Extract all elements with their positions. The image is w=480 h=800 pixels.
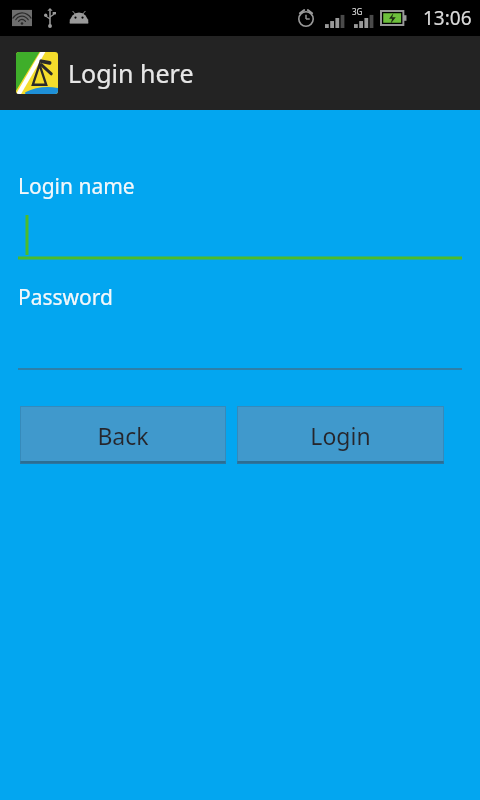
staticText: Login name bbox=[18, 172, 135, 201]
staticText: Login here bbox=[68, 56, 194, 90]
staticText: Back bbox=[97, 420, 149, 451]
staticText: Login bbox=[310, 420, 371, 451]
button[interactable] bbox=[18, 213, 462, 259]
button[interactable]: Login bbox=[237, 406, 444, 464]
button[interactable]: Back bbox=[20, 406, 226, 464]
button[interactable] bbox=[18, 324, 462, 370]
staticText: 13:06 bbox=[423, 5, 472, 31]
staticText: Password bbox=[18, 283, 113, 312]
staticText: 3G bbox=[352, 6, 363, 17]
